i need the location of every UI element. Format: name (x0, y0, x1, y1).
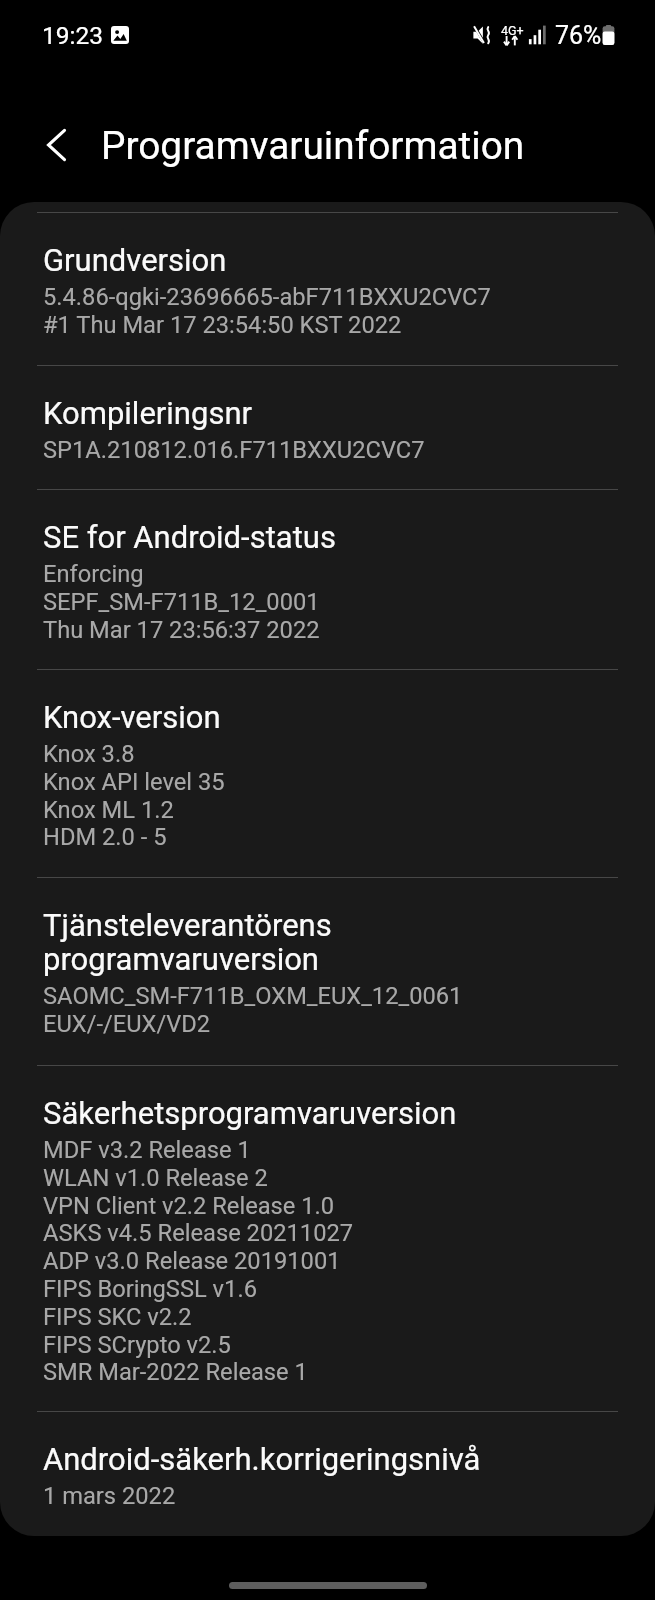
staticText: SE for Android-status (43, 519, 336, 555)
button[interactable]: Kompileringsnr (0, 366, 655, 490)
staticText: Android-säkerh.korrigeringsnivå (43, 1441, 481, 1477)
staticText: Thu Mar 17 23:56:37 2022 (43, 616, 320, 644)
staticText: 5.4.86-qgki-23696665-abF711BXXU2CVC7 (43, 283, 491, 311)
staticText: programvaruversion (43, 941, 319, 977)
staticText: Knox API level 35 (43, 768, 225, 796)
button[interactable]: Säkerhetsprogramvaruversion (0, 1066, 655, 1412)
staticText: SAOMC_SM-F711B_OXM_EUX_12_0061 (43, 982, 463, 1010)
staticText: Kompileringsnr (43, 395, 253, 431)
button[interactable]: Back (28, 117, 84, 173)
staticText: 19:23 (42, 21, 104, 50)
staticText: HDM 2.0 - 5 (43, 823, 167, 851)
staticText: Programvaruinformation (101, 123, 525, 168)
staticText: Knox-version (43, 699, 221, 735)
staticText: 76% (555, 21, 602, 50)
staticText: 4G+ (501, 23, 524, 38)
staticText: FIPS SKC v2.2 (43, 1303, 192, 1331)
button[interactable]: Tjänsteleverantörens (0, 878, 655, 1066)
staticText: FIPS SCrypto v2.5 (43, 1331, 231, 1359)
button[interactable]: Grundversion (0, 213, 655, 366)
staticText: MDF v3.2 Release 1 (43, 1136, 251, 1164)
button[interactable]: Knox-version (0, 670, 655, 878)
staticText: Säkerhetsprogramvaruversion (43, 1095, 457, 1131)
staticText: FIPS BoringSSL v1.6 (43, 1275, 257, 1303)
staticText: SMR Mar-2022 Release 1 (43, 1358, 308, 1386)
staticText: ASKS v4.5 Release 20211027 (43, 1219, 354, 1247)
staticText: ADP v3.0 Release 20191001 (43, 1247, 341, 1275)
staticText: SEPF_SM-F711B_12_0001 (43, 588, 320, 616)
staticText: Knox ML 1.2 (43, 796, 174, 824)
button[interactable]: SE for Android-status (0, 490, 655, 670)
button[interactable]: Android-säkerh.korrigeringsnivå (0, 1412, 655, 1535)
staticText: #1 Thu Mar 17 23:54:50 KST 2022 (43, 311, 402, 339)
staticText: SP1A.210812.016.F711BXXU2CVC7 (43, 436, 425, 464)
staticText: WLAN v1.0 Release 2 (43, 1164, 268, 1192)
staticText: Knox 3.8 (43, 740, 135, 768)
staticText: VPN Client v2.2 Release 1.0 (43, 1192, 335, 1220)
staticText: Tjänsteleverantörens (43, 907, 332, 943)
staticText: Enforcing (43, 560, 144, 588)
staticText: EUX/-/EUX/VD2 (43, 1010, 211, 1038)
staticText: 1 mars 2022 (43, 1482, 176, 1510)
staticText: Grundversion (43, 242, 227, 278)
